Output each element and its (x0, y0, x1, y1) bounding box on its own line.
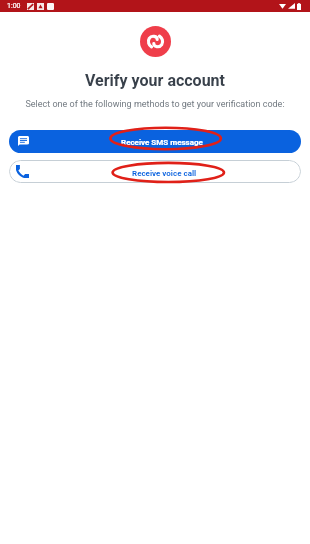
staticText: Verify your account (0, 71, 310, 90)
button[interactable]: Receive voice call (9, 160, 301, 183)
staticText: Select one of the following methods to g… (0, 99, 310, 110)
staticText: Receive SMS message (121, 138, 203, 147)
staticText: 1:00 (7, 2, 21, 10)
other: Receive voice call (16, 165, 29, 178)
button[interactable]: Receive SMS message (9, 130, 301, 153)
other: Receive SMS message (18, 136, 29, 146)
staticText: Receive voice call (132, 169, 197, 178)
